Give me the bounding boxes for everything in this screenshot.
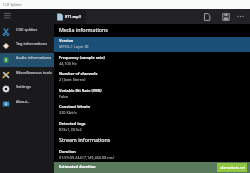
staticText: Constant bitrate (59, 104, 91, 109)
button[interactable]: Number of channels (54, 70, 250, 85)
button[interactable]: Miscellaneous tools (0, 68, 54, 82)
staticText: Estimated duration (59, 164, 96, 169)
staticText: Number of channels (59, 71, 98, 76)
staticText: Media informations (59, 26, 108, 33)
staticText: 2 (Joint Stereo) (59, 77, 86, 82)
button[interactable]: Frequency (sample rate) (54, 54, 250, 69)
staticText: 44,100 Hz (59, 61, 77, 66)
button[interactable]: Duration (54, 148, 250, 163)
staticText: Detected tags (59, 121, 86, 126)
staticText: Stream informations (59, 136, 111, 143)
staticText: About... (16, 99, 31, 104)
staticText: MPEG-1 Layer III (59, 44, 89, 49)
staticText: Duration (59, 149, 76, 154)
staticText: Frequency (sample rate) (59, 55, 105, 60)
button[interactable]: Settings (0, 82, 54, 96)
staticText: Variable Bit Rate (VBR) (59, 88, 102, 93)
button[interactable]: Tag informations (0, 39, 54, 53)
button[interactable]: Detected tags (54, 120, 250, 135)
button[interactable]: About... (0, 97, 54, 111)
button[interactable]: Variable Bit Rate (VBR) (54, 87, 250, 102)
staticText: False (59, 94, 69, 99)
button[interactable]: 811.mp3 (54, 9, 86, 24)
button[interactable]: More options (233, 9, 248, 24)
button[interactable]: Constant bitrate (54, 103, 250, 118)
staticText: Miscellaneous tools (16, 70, 52, 75)
staticText: Audio informations (16, 55, 52, 60)
staticText: Version (59, 38, 74, 43)
staticText: ID3v1, ID3v2 (59, 127, 82, 132)
staticText: 01:59:09.244 (7,149,244.08 ms) (59, 155, 114, 160)
staticText: CUE Splitter (3, 2, 22, 7)
staticText: 320 Kbit/s (59, 110, 77, 115)
button[interactable]: Audio informations (0, 53, 54, 67)
staticText: Settings (16, 84, 31, 89)
button[interactable]: Estimated duration (54, 162, 250, 173)
button[interactable]: Menu (0, 9, 54, 24)
button[interactable]: CUE splitter (0, 25, 54, 39)
button[interactable]: Version (54, 37, 250, 52)
staticText: CUE splitter (16, 27, 38, 32)
staticText: alternativeto.net (220, 166, 245, 170)
button[interactable]: Save (218, 9, 233, 24)
staticText: 811.mp3 (65, 14, 81, 19)
staticText: Tag informations (16, 41, 47, 46)
button[interactable]: New file (199, 9, 214, 24)
